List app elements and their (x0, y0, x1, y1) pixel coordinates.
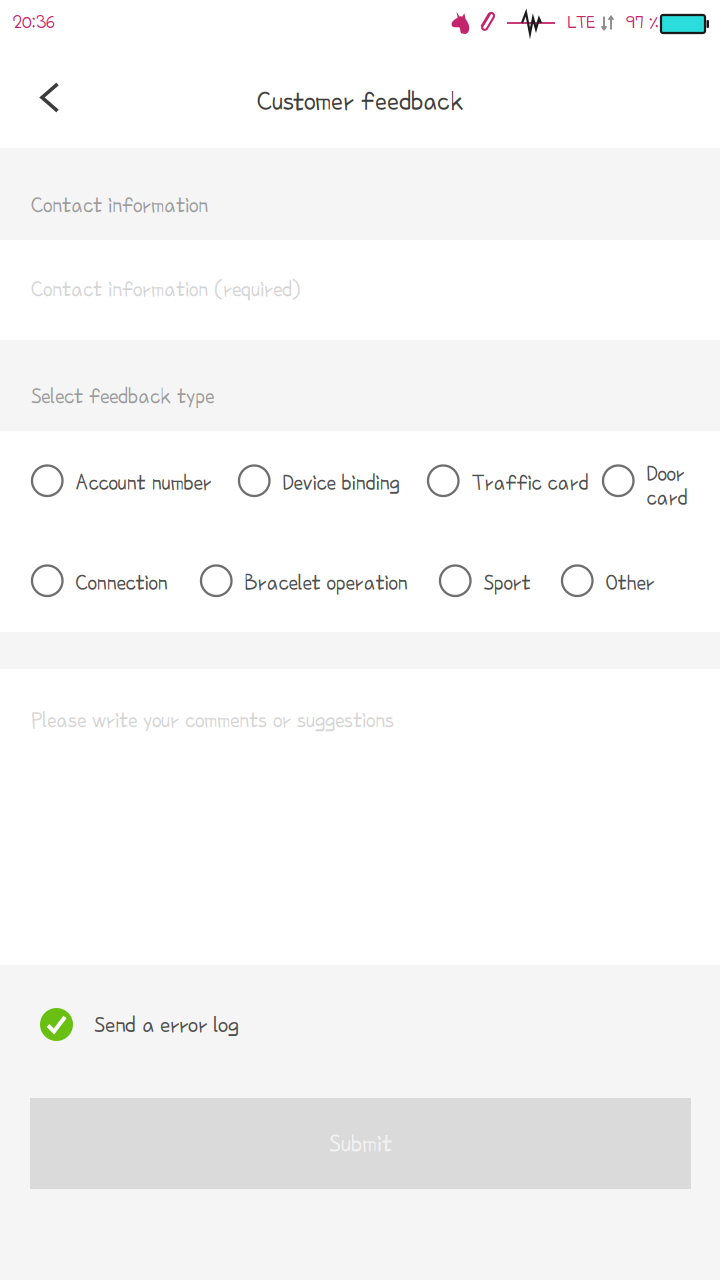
staticText: Contact information (31, 193, 208, 217)
staticText: Other (605, 570, 654, 594)
staticText: 20:36 (13, 12, 55, 32)
staticText: LTE (567, 13, 595, 32)
staticText: Send a error log (94, 1012, 239, 1037)
button[interactable]: Contact information (required) (0, 240, 720, 340)
button[interactable]: Door card (0, 431, 696, 509)
staticText: Please write your comments or suggestion… (31, 708, 394, 732)
staticText: Select feedback type (31, 384, 214, 408)
staticText: Bracelet operation (244, 570, 407, 594)
button[interactable]: Device binding (0, 431, 406, 496)
button[interactable]: Sport (0, 431, 534, 596)
staticText: Traffic card (471, 470, 588, 494)
staticText: Account number (75, 470, 211, 494)
button[interactable]: Other (0, 431, 658, 596)
button[interactable]: Send a error log (0, 965, 300, 1041)
staticText: 97 % (626, 13, 659, 32)
staticText: Device binding (282, 470, 399, 494)
button[interactable]: Submit (0, 965, 691, 1189)
button[interactable]: Bracelet operation (0, 431, 413, 596)
staticText: Submit (329, 1130, 392, 1157)
button[interactable]: Connection (0, 431, 172, 596)
staticText: Door card (646, 461, 687, 509)
staticText: Customer feedback (257, 86, 463, 116)
button[interactable]: Account number (0, 431, 216, 496)
staticText: Sport (483, 570, 530, 594)
staticText: Connection (75, 570, 167, 594)
button[interactable]: Back (0, 61, 92, 135)
button[interactable]: Please write your comments or suggestion… (0, 669, 720, 965)
staticText: Contact information (required) (31, 277, 301, 301)
button[interactable]: Traffic card (0, 431, 594, 496)
